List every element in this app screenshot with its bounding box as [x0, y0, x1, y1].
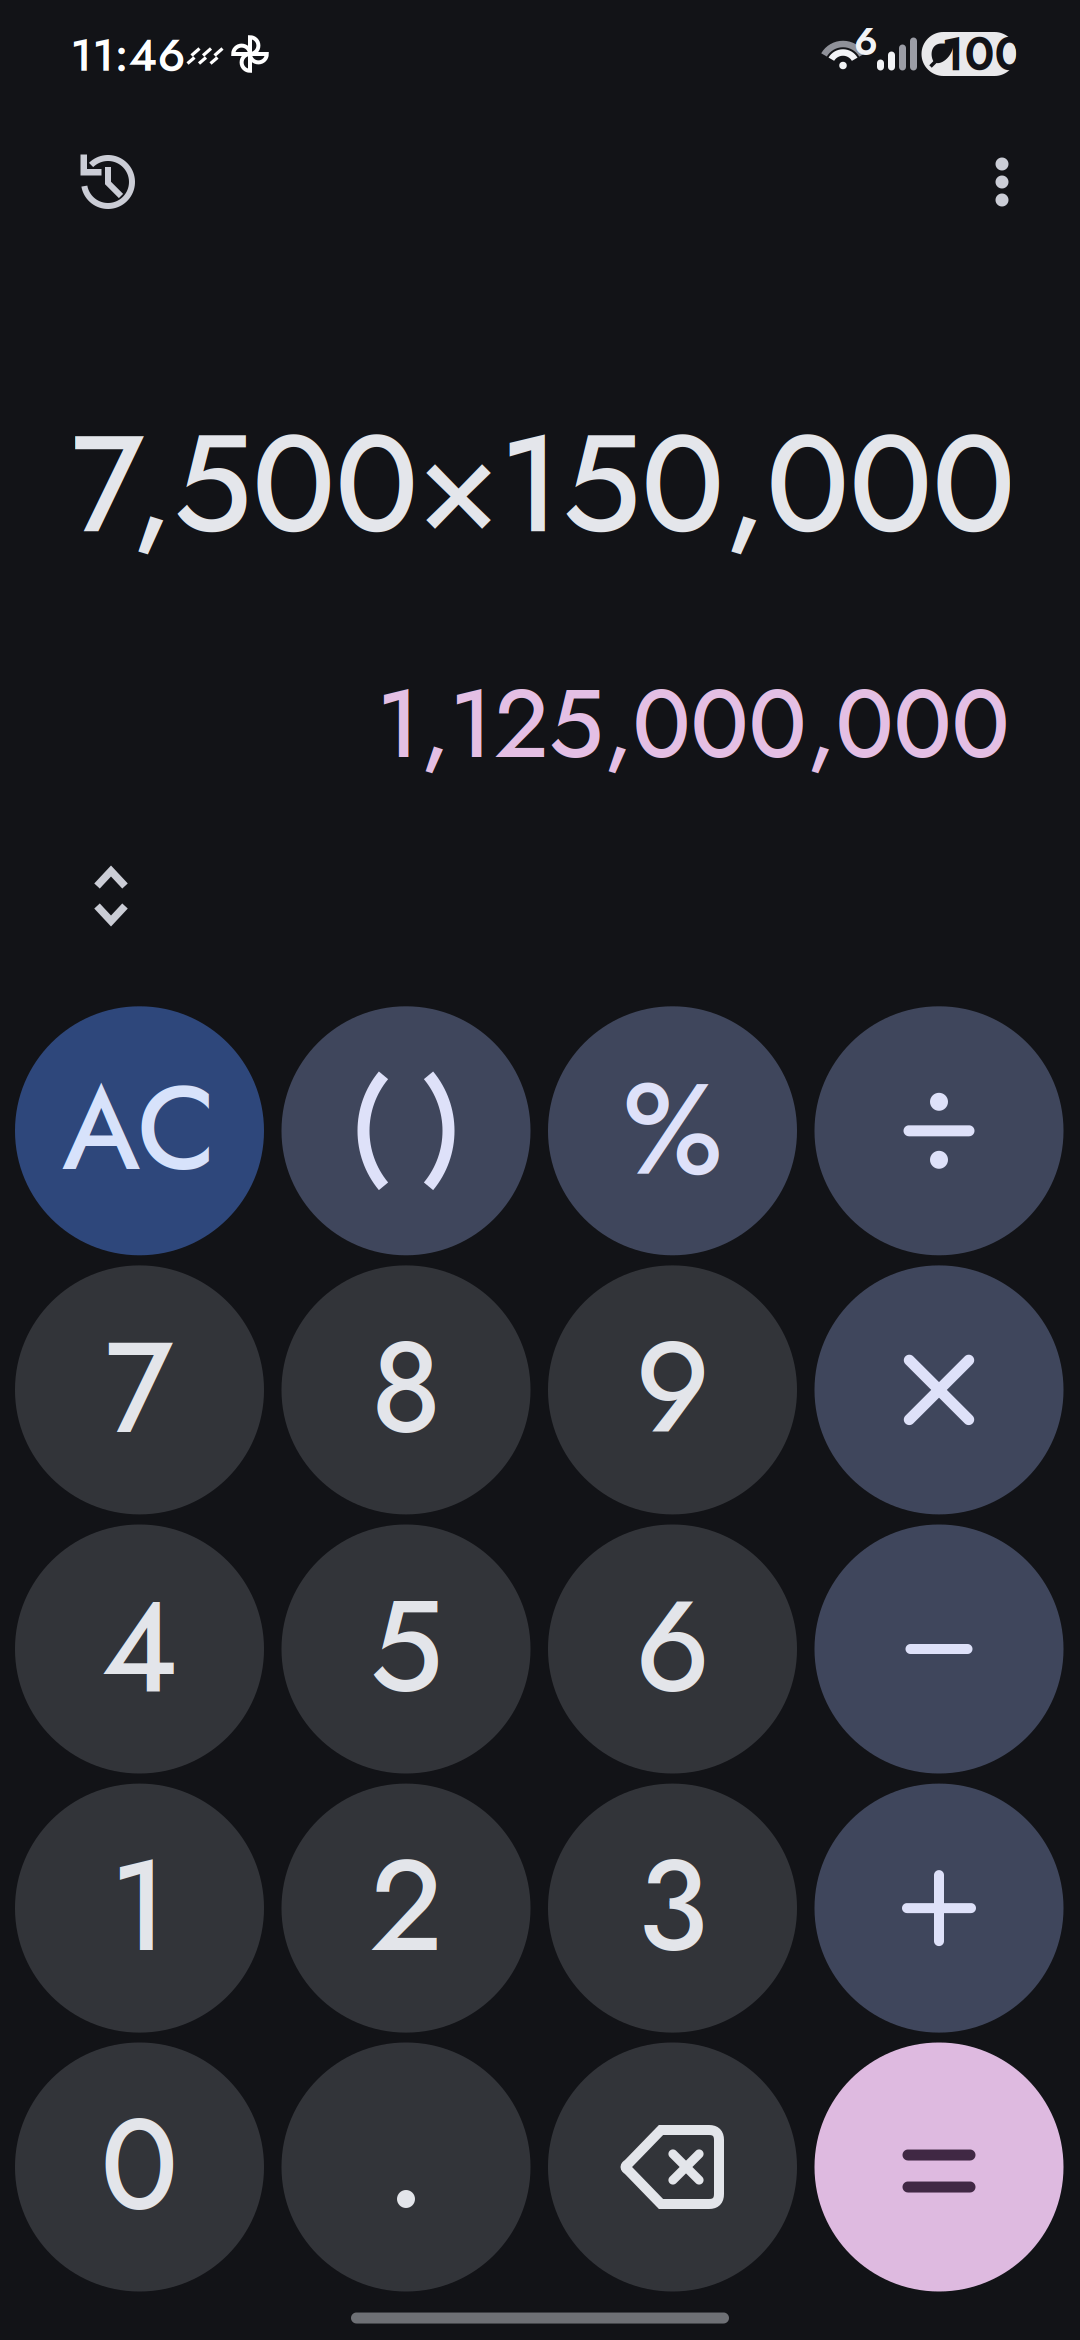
staticText: 7	[105, 1296, 174, 1479]
button[interactable]: More options	[942, 122, 1062, 242]
button[interactable]: Multiply	[814, 1265, 1063, 1514]
staticText: %	[622, 1036, 722, 1221]
staticText: 5	[369, 1555, 442, 1738]
button[interactable]: 1	[15, 1784, 264, 2033]
staticText: 6	[635, 1555, 710, 1738]
button[interactable]: Add	[814, 1784, 1063, 2033]
staticText: 3	[637, 1815, 708, 1998]
button[interactable]: 3	[548, 1784, 797, 2033]
staticText: 8	[370, 1296, 441, 1479]
button[interactable]: Decimal point	[281, 2042, 530, 2291]
button[interactable]: 0	[15, 2042, 264, 2291]
button[interactable]: 7	[15, 1265, 264, 1514]
button[interactable]: Backspace	[548, 2042, 797, 2291]
staticText: 100	[941, 20, 1024, 88]
staticText: 4	[101, 1555, 178, 1738]
button[interactable]: Parentheses	[281, 1006, 530, 1255]
button[interactable]: 9	[548, 1265, 797, 1514]
staticText: 1	[110, 1815, 169, 1998]
button[interactable]: 2	[281, 1784, 530, 2033]
staticText: 6	[854, 15, 878, 69]
staticText: 11:46	[70, 22, 185, 88]
button[interactable]: 6	[548, 1524, 797, 1773]
button[interactable]: 4	[15, 1524, 264, 1773]
button[interactable]: Divide	[814, 1006, 1063, 1255]
button[interactable]: Expand history	[61, 846, 161, 946]
staticText: 2	[369, 1815, 443, 1998]
staticText: 9	[635, 1296, 710, 1479]
staticText: 0	[100, 2073, 178, 2256]
staticText: 1,125,000,000	[376, 656, 1009, 792]
button[interactable]: %	[548, 1006, 797, 1255]
button[interactable]: 8	[281, 1265, 530, 1514]
staticText: AC	[62, 1045, 217, 1213]
button[interactable]: Equals	[814, 2042, 1063, 2291]
button[interactable]: Subtract	[814, 1524, 1063, 1773]
staticText: 7,500×150,000	[71, 386, 1015, 582]
button[interactable]: History	[48, 122, 168, 242]
button[interactable]: AC	[15, 1006, 264, 1255]
button[interactable]: 5	[281, 1524, 530, 1773]
